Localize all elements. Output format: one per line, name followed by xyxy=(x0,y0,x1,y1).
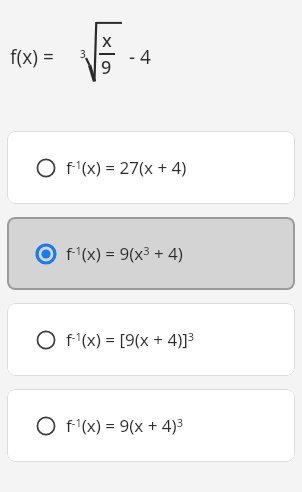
button[interactable]: Select answer xyxy=(7,389,295,462)
other: Select answer xyxy=(36,330,56,350)
staticText: 3 xyxy=(80,47,86,61)
staticText: - 4 xyxy=(129,44,151,70)
staticText: f(x) = xyxy=(10,44,54,70)
staticText: f-1(x) = [9(x + 4)]3 xyxy=(66,328,195,351)
staticText: f-1(x) = 27(x + 4) xyxy=(66,156,187,179)
other: Selected answer xyxy=(36,244,56,264)
staticText: f-1(x) = 9(x3 + 4) xyxy=(66,242,183,265)
staticText: 9 xyxy=(101,55,112,80)
other: Select answer xyxy=(36,416,56,436)
button[interactable]: Select answer xyxy=(7,303,295,376)
staticText: f-1(x) = 9(x + 4)3 xyxy=(66,414,183,437)
other: Select answer xyxy=(36,158,56,178)
button[interactable]: Selected answer xyxy=(7,217,295,290)
button[interactable]: Select answer xyxy=(7,131,295,204)
staticText: x xyxy=(102,28,112,53)
